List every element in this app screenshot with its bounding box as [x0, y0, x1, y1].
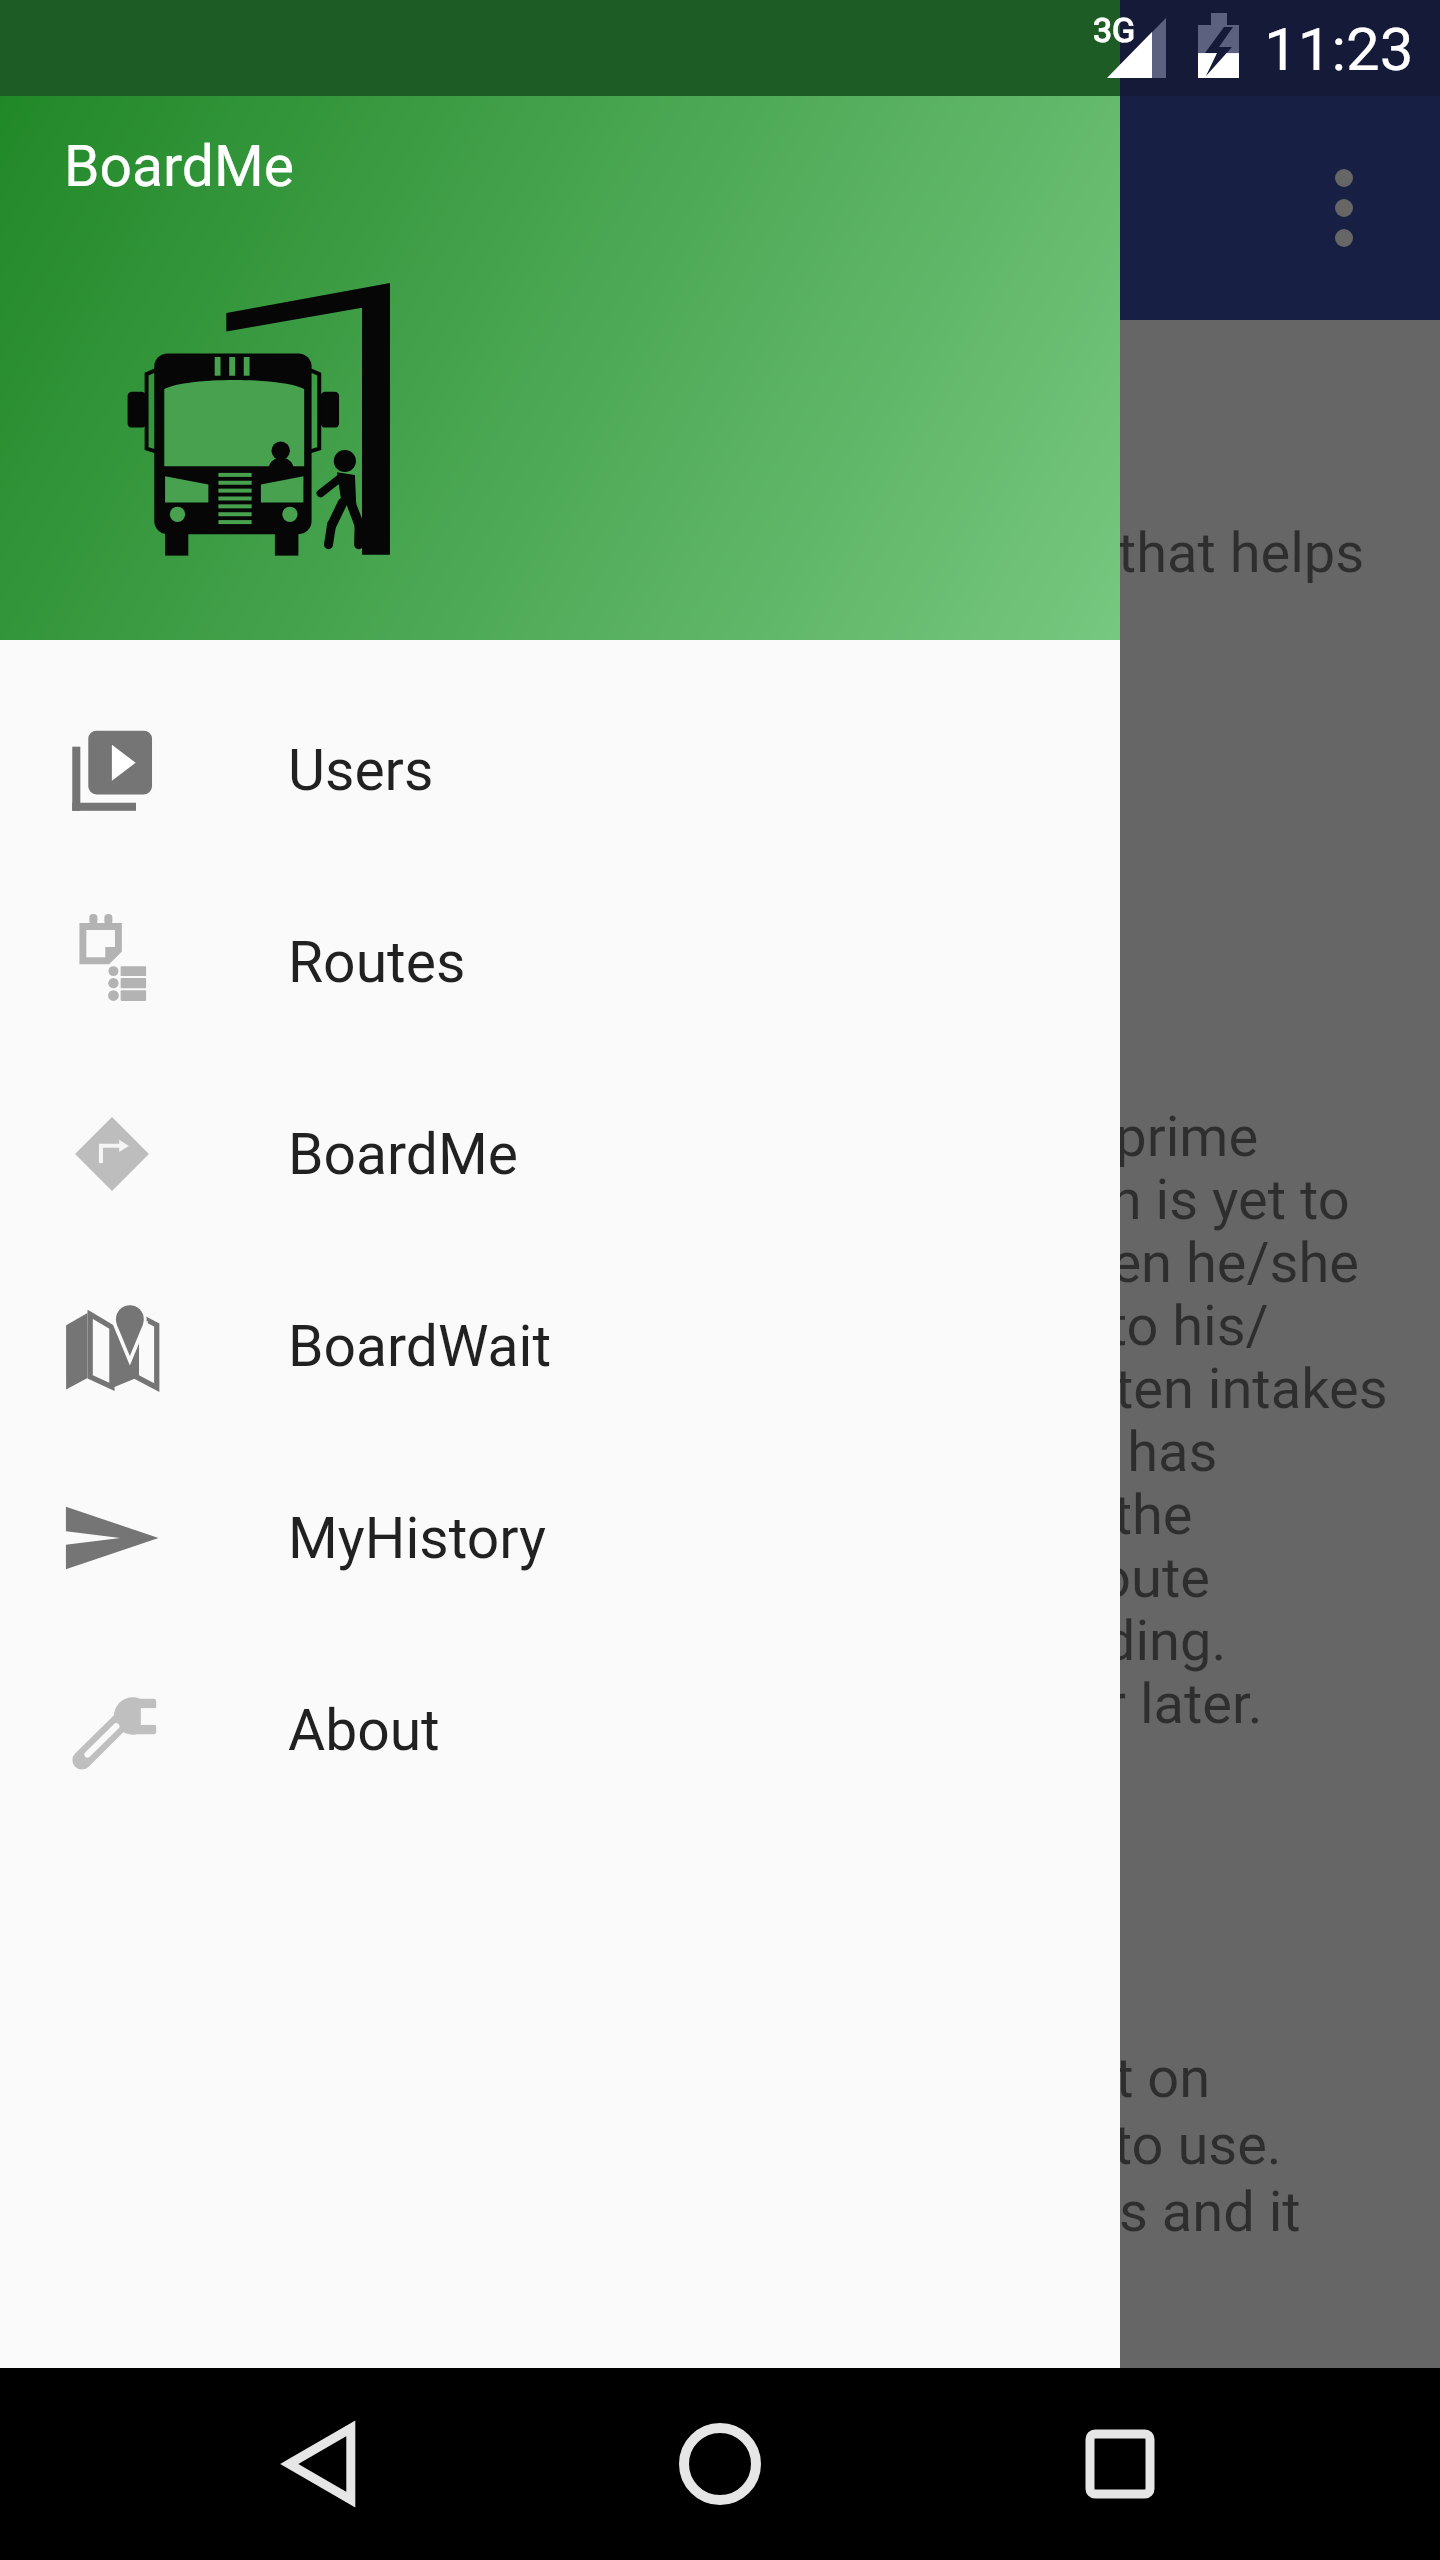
staticText: previously visited bus stop or the stati…	[56, 1545, 1210, 1611]
button[interactable]: Close navigation drawer	[0, 320, 1440, 2368]
button[interactable]: Back	[240, 2384, 400, 2544]
staticText: a passenger to find and board a bus at t…	[56, 1104, 1259, 1170]
staticText: The user may also save a favourite stop …	[56, 1671, 1263, 1737]
button[interactable]: Home	[640, 2384, 800, 2544]
staticText: boarding point of the route. The applica…	[56, 1167, 1350, 1233]
staticText: About	[288, 1697, 440, 1764]
button[interactable]: Users	[0, 674, 1120, 866]
staticText: BoardMe	[64, 133, 294, 200]
staticText: BoardMe is a smart commuter application …	[56, 520, 1365, 586]
staticText: 11:23	[1264, 14, 1414, 84]
staticText: BoardMe	[288, 1121, 518, 1188]
button[interactable]: BoardMe	[0, 1058, 1120, 1250]
staticText: 3G	[1093, 10, 1136, 50]
staticText: It uses plenty of the very latest techno…	[56, 2179, 1301, 2245]
staticText: all of the stored details of the travell…	[56, 1419, 1218, 1485]
button[interactable]: About	[0, 1634, 1120, 1826]
staticText: BoardWait	[288, 1313, 552, 1380]
staticText: The whole of this application has been b…	[56, 2045, 1211, 2111]
staticText: of a certain locality or a part of a lar…	[56, 1608, 1227, 1674]
button[interactable]: BoardWait	[0, 1250, 1120, 1442]
staticText: notify its user a short while beforehand…	[56, 1230, 1359, 1296]
staticText: MyHistory	[288, 1505, 547, 1572]
staticText: Android Studio and so it really is very …	[56, 2112, 1282, 2178]
button[interactable]: More options	[1280, 144, 1408, 272]
button[interactable]: Routes	[0, 866, 1120, 1058]
button[interactable]: MyHistory	[0, 1442, 1120, 1634]
button[interactable]: Recent apps	[1040, 2384, 1200, 2544]
staticText: her own set preference. The application …	[56, 1356, 1388, 1422]
staticText: reaches the chosen destination according…	[56, 1293, 1269, 1359]
staticText: just alighted or has stepped right out f…	[56, 1482, 1193, 1548]
staticText: Users	[288, 737, 434, 804]
staticText: Routes	[288, 929, 466, 996]
